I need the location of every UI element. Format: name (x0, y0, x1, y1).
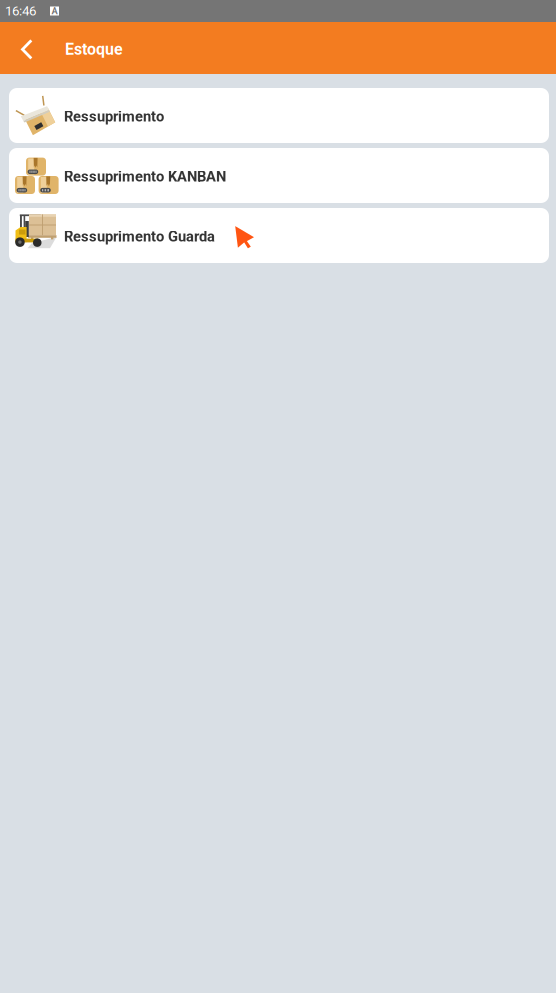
staticText: A (51, 5, 57, 16)
staticText: 16:46 (5, 3, 36, 19)
staticText: Ressuprimento Guarda (64, 228, 215, 245)
button[interactable]: Ressuprimento KANBAN (9, 148, 549, 203)
staticText: Ressuprimento (64, 108, 164, 125)
staticText: Ressuprimento KANBAN (64, 168, 226, 185)
button[interactable]: Ressuprimento (9, 88, 549, 143)
button[interactable]: Back (0, 22, 46, 74)
button[interactable]: Ressuprimento Guarda (9, 208, 549, 263)
staticText: Estoque (65, 40, 123, 59)
